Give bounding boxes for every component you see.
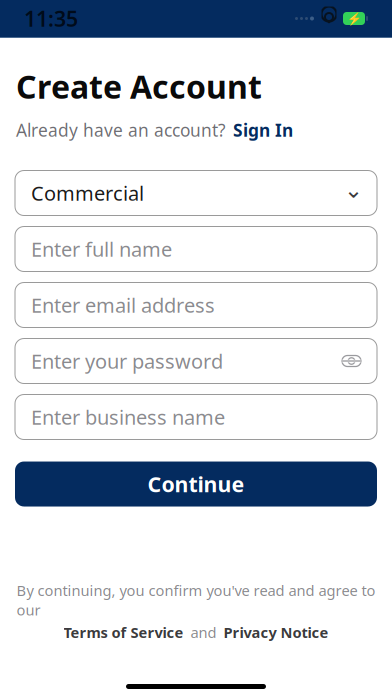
staticText: ⚡ xyxy=(346,12,361,25)
button[interactable]: Enter full name xyxy=(15,226,377,271)
button[interactable]: Enter your password xyxy=(15,338,377,383)
button[interactable]: Privacy Notice xyxy=(223,622,328,642)
staticText: Enter business name xyxy=(31,404,225,430)
button[interactable]: Enter business name xyxy=(15,394,377,439)
button[interactable]: Commercial xyxy=(15,170,377,215)
staticText: Create Account xyxy=(16,65,262,107)
button[interactable]: Sign In xyxy=(226,116,293,143)
staticText: Terms of Service xyxy=(63,622,183,642)
staticText: ⌄ xyxy=(344,177,363,203)
staticText: By continuing, you confirm you've read a… xyxy=(16,581,375,620)
staticText: and xyxy=(190,622,216,642)
button[interactable]: Enter email address xyxy=(15,282,377,327)
staticText: Enter full name xyxy=(31,236,172,262)
button[interactable]: Continue xyxy=(15,461,377,506)
staticText: Sign In xyxy=(233,118,293,141)
staticText: Enter email address xyxy=(31,292,215,318)
staticText: Privacy Notice xyxy=(223,622,328,642)
staticText: Commercial xyxy=(31,180,144,206)
staticText: Enter your password xyxy=(31,348,223,374)
staticText: Already have an account? xyxy=(16,118,226,141)
staticText: Continue xyxy=(147,470,244,498)
button[interactable]: Terms of Service xyxy=(63,622,183,642)
staticText: 11:35 xyxy=(24,4,78,33)
